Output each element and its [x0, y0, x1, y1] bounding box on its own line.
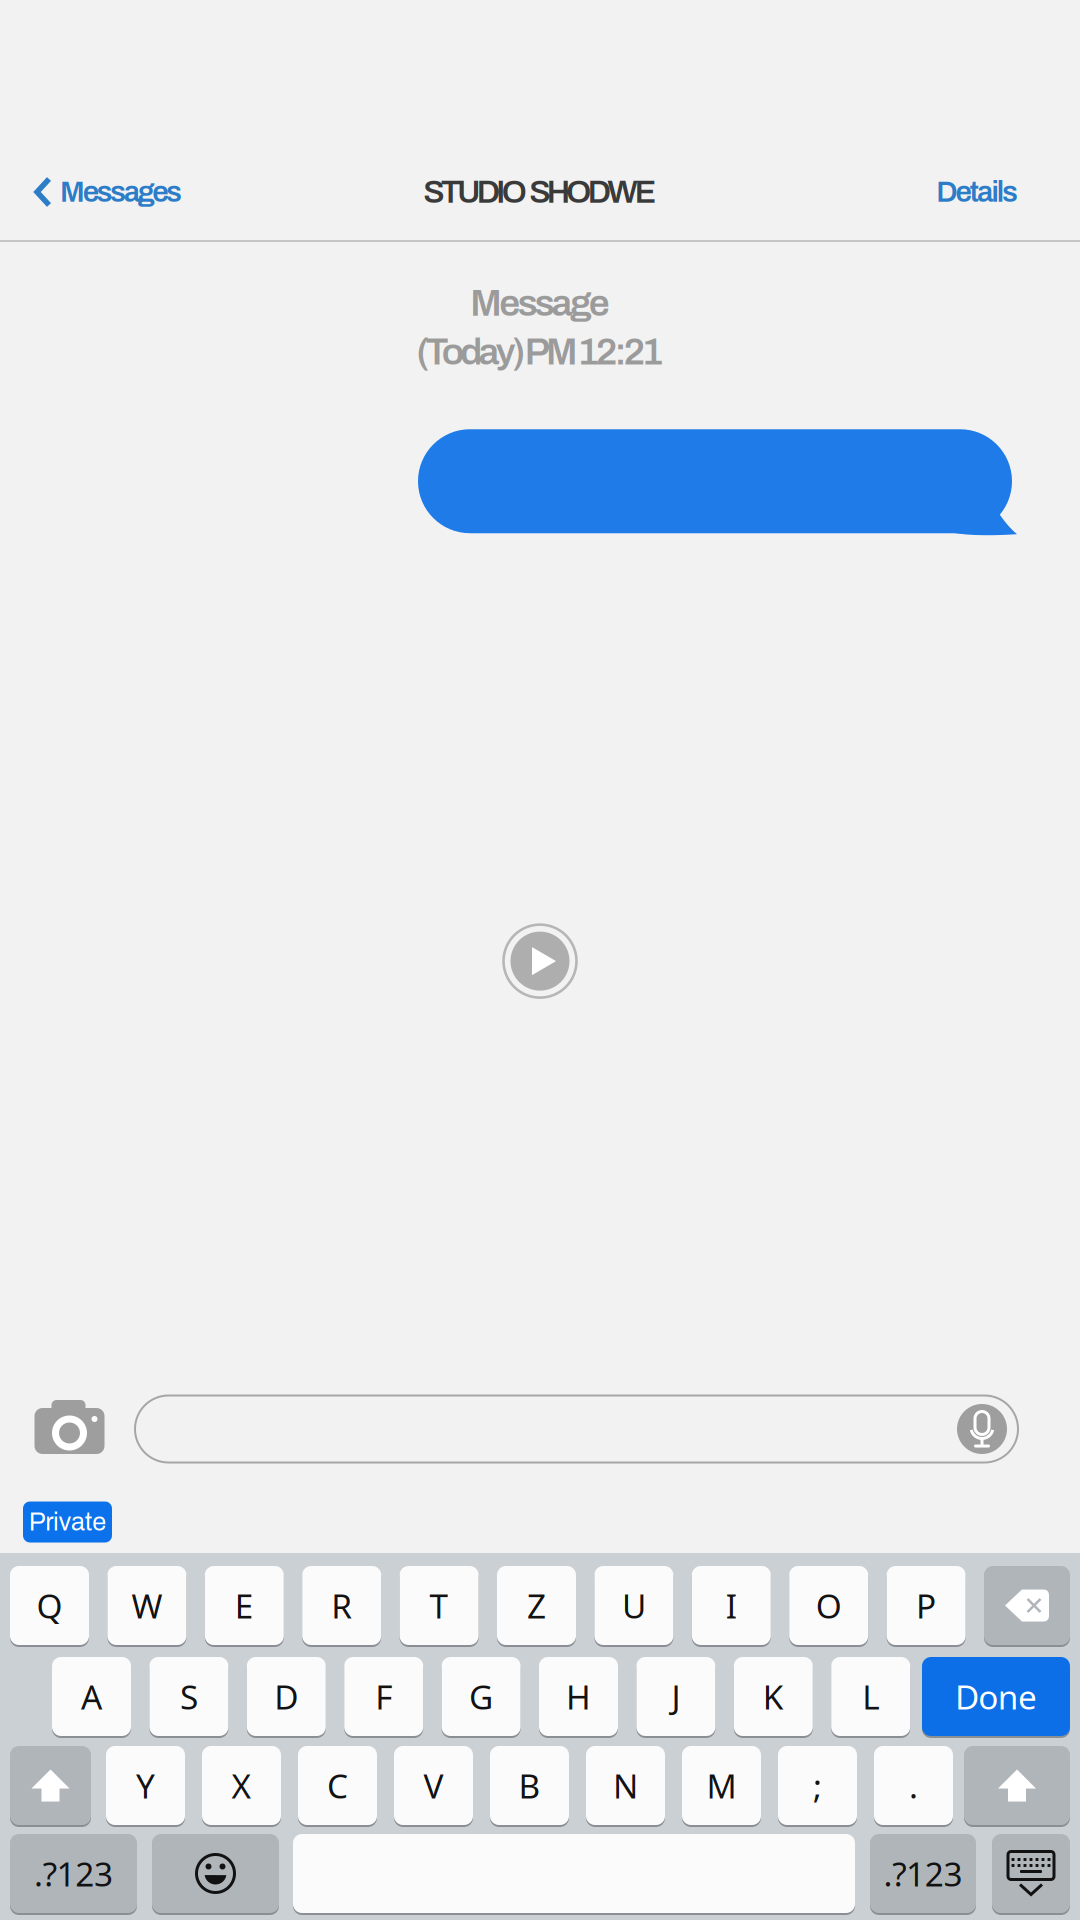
button[interactable]: Private: [23, 1501, 112, 1542]
button[interactable]: X: [202, 1745, 281, 1826]
staticText: D: [274, 1674, 298, 1719]
staticText: W: [131, 1583, 162, 1628]
button[interactable]: M: [682, 1745, 761, 1826]
button[interactable]: .?123: [870, 1833, 976, 1914]
button[interactable]: Q: [10, 1565, 89, 1646]
button[interactable]: Emoji: [152, 1833, 279, 1914]
staticText: K: [763, 1674, 784, 1719]
button[interactable]: P: [887, 1565, 966, 1646]
staticText: Z: [527, 1583, 546, 1628]
staticText: Message: [470, 283, 610, 324]
button[interactable]: C: [298, 1745, 377, 1826]
button[interactable]: Details: [936, 158, 1080, 226]
staticText: Q: [36, 1583, 62, 1628]
button[interactable]: .: [874, 1745, 953, 1826]
staticText: G: [469, 1674, 493, 1719]
staticText: Y: [136, 1763, 155, 1808]
staticText: N: [613, 1763, 638, 1808]
staticText: E: [235, 1583, 254, 1628]
staticText: A: [81, 1674, 102, 1719]
staticText: (Today) PM 12:21: [416, 332, 664, 372]
button[interactable]: J: [636, 1656, 715, 1737]
button[interactable]: W: [107, 1565, 186, 1646]
button[interactable]: H: [539, 1656, 618, 1737]
button[interactable]: [293, 1833, 855, 1914]
staticText: J: [671, 1674, 680, 1719]
staticText: H: [566, 1674, 591, 1719]
button[interactable]: V: [394, 1745, 473, 1826]
staticText: X: [231, 1763, 251, 1808]
button[interactable]: Messages: [0, 158, 182, 226]
button[interactable]: Hide keyboard: [992, 1833, 1070, 1914]
staticText: L: [862, 1674, 879, 1719]
button[interactable]: Dictate: [957, 1404, 1018, 1454]
staticText: F: [375, 1674, 392, 1719]
staticText: S: [180, 1674, 198, 1719]
staticText: P: [916, 1583, 936, 1628]
button[interactable]: Z: [497, 1565, 576, 1646]
staticText: B: [518, 1763, 540, 1808]
button[interactable]: Delete: [984, 1565, 1070, 1646]
staticText: M: [706, 1763, 736, 1808]
button[interactable]: Play: [495, 916, 585, 1006]
button[interactable]: Done: [922, 1656, 1070, 1737]
button[interactable]: ;: [778, 1745, 857, 1826]
button[interactable]: R: [302, 1565, 381, 1646]
staticText: Details: [936, 176, 1018, 208]
staticText: T: [430, 1583, 449, 1628]
staticText: I: [726, 1583, 737, 1628]
button[interactable]: Shift: [10, 1745, 91, 1826]
button[interactable]: G: [442, 1656, 521, 1737]
button[interactable]: I: [692, 1565, 771, 1646]
staticText: .?123: [884, 1851, 962, 1896]
button[interactable]: O: [789, 1565, 868, 1646]
button[interactable]: E: [205, 1565, 284, 1646]
staticText: ;: [813, 1763, 822, 1808]
staticText: U: [622, 1583, 646, 1628]
button[interactable]: A: [52, 1656, 131, 1737]
staticText: Done: [955, 1674, 1037, 1719]
button[interactable]: N: [586, 1745, 665, 1826]
staticText: O: [816, 1583, 842, 1628]
button[interactable]: D: [247, 1656, 326, 1737]
button[interactable]: Camera: [0, 1386, 135, 1472]
button[interactable]: S: [149, 1656, 228, 1737]
button[interactable]: U: [594, 1565, 673, 1646]
staticText: .?123: [34, 1851, 113, 1896]
staticText: STUDIO SHODWE: [423, 175, 657, 209]
button[interactable]: Y: [106, 1745, 185, 1826]
staticText: Private: [29, 1508, 106, 1536]
staticText: Messages: [60, 176, 182, 208]
staticText: .: [909, 1763, 918, 1808]
button[interactable]: K: [734, 1656, 813, 1737]
staticText: V: [423, 1763, 443, 1808]
button[interactable]: L: [831, 1656, 910, 1737]
button[interactable]: .?123: [10, 1833, 137, 1914]
button[interactable]: B: [490, 1745, 569, 1826]
button[interactable]: Shift: [964, 1745, 1070, 1826]
staticText: C: [327, 1763, 348, 1808]
button[interactable]: F: [344, 1656, 423, 1737]
staticText: R: [331, 1583, 352, 1628]
button[interactable]: T: [400, 1565, 479, 1646]
